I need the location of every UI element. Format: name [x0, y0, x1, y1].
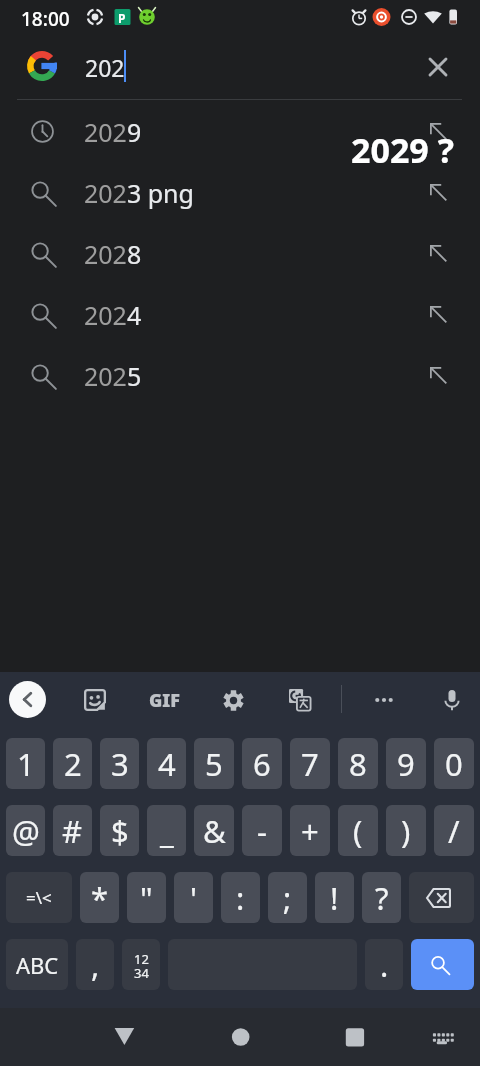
staticText: 2024: [84, 298, 142, 332]
staticText: 1: [17, 743, 35, 785]
button[interactable]: _: [147, 805, 186, 856]
button[interactable]: 6: [242, 738, 282, 789]
button[interactable]: ;: [268, 872, 307, 923]
staticText: 4: [158, 743, 176, 785]
staticText: 2029: [84, 115, 142, 149]
button[interactable]: GIF: [144, 680, 184, 720]
staticText: 18:00: [21, 6, 70, 32]
staticText: 2025: [84, 359, 142, 393]
button[interactable]: 2025: [0, 345, 480, 406]
button[interactable]: Translate: [280, 680, 320, 720]
button[interactable]: .: [365, 939, 403, 990]
staticText: (: [353, 810, 363, 852]
button[interactable]: Voice input: [432, 680, 472, 720]
button[interactable]: *: [80, 872, 119, 923]
button[interactable]: Back: [96, 1018, 152, 1056]
other: Search: [429, 954, 450, 975]
staticText: *: [91, 877, 109, 919]
button[interactable]: 0: [434, 738, 474, 789]
button[interactable]: 2: [53, 738, 92, 789]
staticText: 5: [205, 743, 223, 785]
button[interactable]: 9: [386, 738, 426, 789]
staticText: 3: [111, 743, 129, 785]
staticText: 2028: [84, 237, 142, 271]
button[interactable]: #: [53, 805, 92, 856]
button[interactable]: Search: [411, 939, 474, 990]
other: Backspace: [426, 888, 451, 908]
staticText: 2029 ?: [351, 127, 454, 173]
staticText: #: [62, 810, 83, 852]
staticText: ?: [375, 877, 389, 919]
button[interactable]: $: [100, 805, 139, 856]
button[interactable]: More options: [364, 680, 404, 720]
staticText: .: [380, 944, 389, 986]
staticText: /: [448, 810, 460, 852]
button[interactable]: 7: [290, 738, 330, 789]
button[interactable]: &: [194, 805, 234, 856]
staticText: 6: [253, 743, 271, 785]
staticText: 2023 png: [84, 176, 194, 210]
staticText: 0: [445, 743, 463, 785]
button[interactable]: Back: [9, 681, 46, 718]
staticText: ;: [283, 877, 292, 919]
staticText: !: [330, 877, 339, 919]
button[interactable]: =\<: [6, 872, 72, 923]
button[interactable]: ": [127, 872, 166, 923]
staticText: 12 34: [134, 950, 149, 982]
button[interactable]: Switch keyboard: [414, 1018, 470, 1056]
button[interactable]: 2024: [0, 284, 480, 345]
staticText: @: [12, 810, 40, 852]
staticText: ": [140, 877, 153, 919]
button[interactable]: 1: [6, 738, 45, 789]
staticText: 202: [85, 52, 125, 83]
staticText: -: [257, 810, 267, 852]
staticText: +: [301, 810, 319, 852]
button[interactable]: 2028: [0, 223, 480, 284]
staticText: ': [190, 877, 197, 919]
staticText: _: [160, 810, 174, 852]
button[interactable]: -: [242, 805, 282, 856]
staticText: =\<: [26, 886, 52, 909]
button[interactable]: ?: [362, 872, 401, 923]
button[interactable]: Home: [212, 1018, 268, 1056]
staticText: ABC: [16, 950, 59, 980]
staticText: P: [118, 10, 126, 26]
staticText: 8: [349, 743, 367, 785]
button[interactable]: Clear search: [418, 47, 458, 87]
button[interactable]: (: [338, 805, 378, 856]
staticText: &: [203, 810, 226, 852]
staticText: ): [401, 810, 411, 852]
staticText: :: [236, 877, 245, 919]
staticText: GIF: [149, 688, 180, 713]
staticText: 9: [397, 743, 415, 785]
staticText: $: [111, 810, 129, 852]
button[interactable]: 5: [194, 738, 234, 789]
button[interactable]: 4: [147, 738, 186, 789]
button[interactable]: @: [6, 805, 45, 856]
button[interactable]: Backspace: [409, 872, 474, 923]
button[interactable]: ': [174, 872, 213, 923]
button[interactable]: :: [221, 872, 260, 923]
button[interactable]: !: [315, 872, 354, 923]
staticText: 7: [301, 743, 319, 785]
button[interactable]: 8: [338, 738, 378, 789]
button[interactable]: ABC: [6, 939, 68, 990]
button[interactable]: Stickers: [75, 680, 115, 720]
staticText: ,: [91, 944, 100, 986]
button[interactable]: Recent apps: [328, 1018, 384, 1056]
button[interactable]: +: [290, 805, 330, 856]
button[interactable]: 2023 png: [0, 162, 480, 223]
button[interactable]: 2029: [0, 101, 480, 162]
button[interactable]: 12 34: [122, 939, 160, 990]
staticText: 2: [64, 743, 82, 785]
button[interactable]: ,: [76, 939, 114, 990]
button[interactable]: 3: [100, 738, 139, 789]
button[interactable]: /: [434, 805, 474, 856]
button[interactable]: ): [386, 805, 426, 856]
button[interactable]: Settings: [213, 680, 253, 720]
